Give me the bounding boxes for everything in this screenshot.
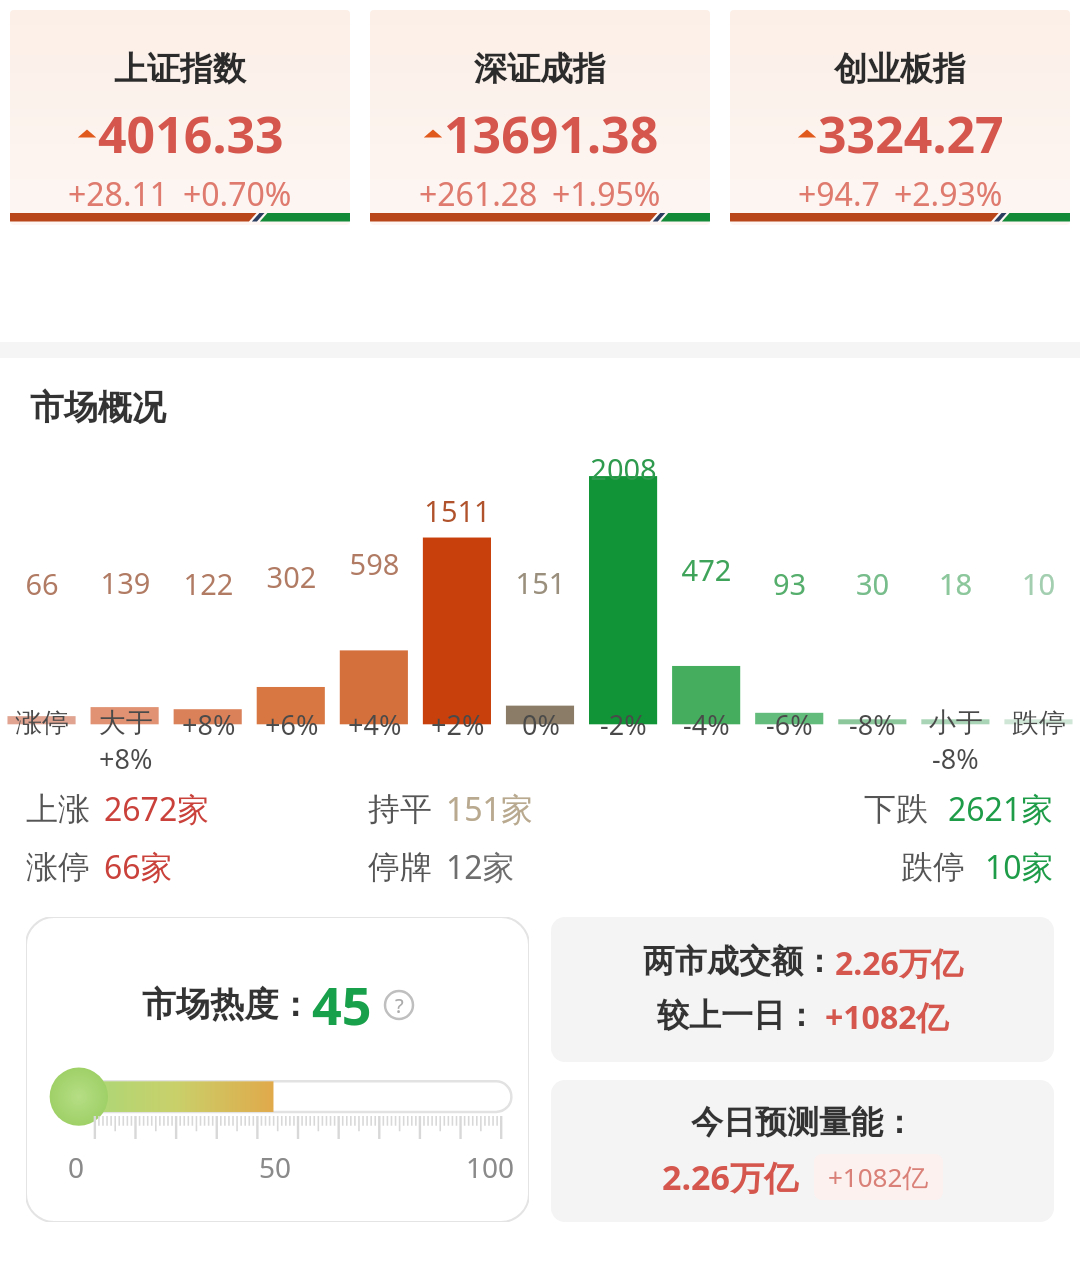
button[interactable]: 帮助 — [384, 990, 414, 1020]
staticText: 151家 — [446, 787, 533, 831]
staticText: 3324.27 — [818, 100, 1004, 168]
staticText: 跌停 — [1012, 706, 1066, 740]
staticText: 10 — [997, 564, 1080, 603]
staticText: 122 — [167, 564, 250, 603]
staticText: 18 — [914, 564, 997, 603]
staticText: +8% — [99, 740, 153, 777]
staticText: 创业板指 — [834, 48, 966, 90]
staticText: 66 — [0, 564, 84, 603]
staticText: ? — [395, 992, 404, 1019]
staticText: 2672家 — [104, 787, 210, 831]
button[interactable]: 创业板指 — [730, 10, 1070, 225]
staticText: +94.7 — [798, 172, 880, 216]
staticText: +1.95% — [552, 172, 661, 216]
staticText: +261.28 — [419, 172, 538, 216]
staticText: 45 — [312, 969, 372, 1040]
staticText: 今日预测量能： — [691, 1102, 915, 1142]
staticText: +1082亿 — [828, 1159, 929, 1195]
staticText: 下跌 — [864, 789, 928, 829]
staticText: 1511 — [416, 491, 499, 530]
staticText: 13691.38 — [444, 100, 659, 168]
staticText: 100 — [466, 1148, 515, 1186]
staticText: 151 — [499, 563, 582, 602]
staticText: 30 — [831, 564, 914, 603]
staticText: 472 — [665, 550, 748, 589]
staticText: 小于 — [929, 706, 983, 740]
staticText: 持平 — [368, 789, 432, 829]
staticText: 涨停 — [26, 847, 90, 887]
staticText: +0.70% — [183, 172, 292, 216]
staticText: 12家 — [446, 845, 515, 889]
staticText: 302 — [250, 557, 333, 596]
staticText: -8% — [932, 740, 979, 777]
staticText: 10家 — [985, 845, 1054, 889]
staticText: 涨停 — [15, 706, 69, 740]
staticText: 66家 — [104, 845, 173, 889]
staticText: 0 — [68, 1148, 85, 1186]
staticText: 市场热度： — [142, 983, 312, 1026]
staticText: 深证成指 — [474, 48, 606, 90]
staticText: 2.26万亿 — [835, 941, 963, 985]
button[interactable]: 深证成指 — [370, 10, 710, 225]
staticText: 4016.33 — [98, 100, 284, 168]
button[interactable]: 上证指数 — [10, 10, 350, 225]
staticText: 大于 — [99, 706, 153, 740]
staticText: +4% — [348, 706, 402, 743]
staticText: 较上一日： — [657, 995, 817, 1035]
button[interactable]: 两市成交额： — [551, 917, 1054, 1062]
staticText: +6% — [265, 706, 319, 743]
staticText: 50 — [259, 1148, 292, 1186]
staticText: -2% — [600, 706, 647, 743]
staticText: 2.26万亿 — [662, 1154, 798, 1200]
staticText: 2008 — [582, 449, 665, 488]
staticText: 跌停 — [901, 847, 965, 887]
staticText: -6% — [766, 706, 813, 743]
staticText: 2621家 — [948, 787, 1054, 831]
button[interactable]: 市场热度： — [26, 917, 529, 1222]
staticText: 上涨 — [26, 789, 90, 829]
staticText: 0% — [522, 706, 560, 743]
staticText: +1082亿 — [825, 995, 949, 1039]
staticText: 两市成交额： — [643, 941, 835, 981]
staticText: +8% — [182, 706, 236, 743]
staticText: 93 — [748, 564, 831, 603]
staticText: +2% — [431, 706, 485, 743]
staticText: -4% — [683, 706, 730, 743]
staticText: 停牌 — [368, 847, 432, 887]
staticText: 市场概况 — [30, 386, 166, 429]
staticText: 598 — [333, 544, 416, 583]
staticText: +28.11 — [68, 172, 169, 216]
button[interactable]: 今日预测量能： — [551, 1080, 1054, 1222]
staticText: 上证指数 — [114, 48, 246, 90]
staticText: 139 — [84, 563, 167, 602]
staticText: -8% — [849, 706, 896, 743]
staticText: +2.93% — [894, 172, 1003, 216]
